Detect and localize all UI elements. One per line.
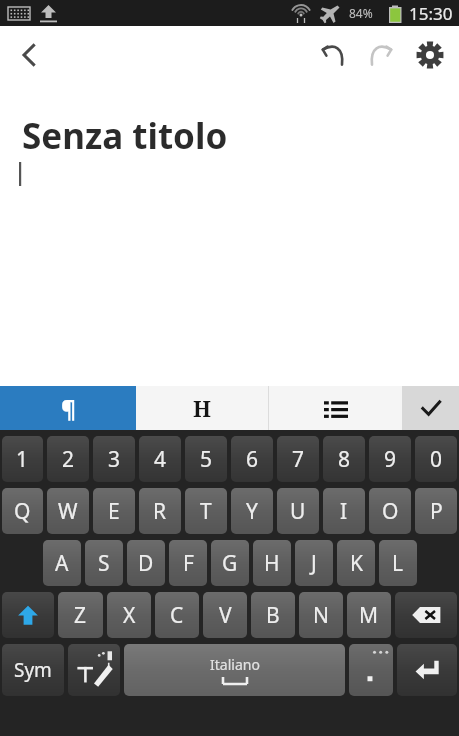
staticText: V xyxy=(219,601,232,630)
staticText: ¶ xyxy=(61,393,76,424)
staticText: K xyxy=(350,549,363,578)
button[interactable]: Undo xyxy=(309,31,357,79)
staticText: N xyxy=(313,601,329,630)
button[interactable]: 6 xyxy=(231,436,273,482)
staticText: J xyxy=(311,549,317,578)
button[interactable]: E xyxy=(93,488,135,534)
staticText: Senza titolo xyxy=(22,112,228,160)
button[interactable]: Enter xyxy=(397,644,457,696)
button[interactable]: A xyxy=(43,540,81,586)
button[interactable]: Period xyxy=(349,644,393,696)
staticText: M xyxy=(359,601,379,630)
staticText: 9 xyxy=(384,445,397,474)
button[interactable]: O xyxy=(369,488,411,534)
button[interactable]: List xyxy=(269,386,402,430)
staticText: 15:30 xyxy=(409,2,453,25)
staticText: S xyxy=(98,549,110,578)
staticText: 6 xyxy=(246,445,259,474)
staticText: B xyxy=(266,601,280,630)
button[interactable]: H xyxy=(253,540,291,586)
staticText: F xyxy=(183,549,194,578)
button[interactable]: F xyxy=(169,540,207,586)
staticText: 8 xyxy=(338,445,351,474)
staticText: I xyxy=(340,497,348,526)
staticText: P xyxy=(430,497,443,526)
button[interactable]: Z xyxy=(58,592,103,638)
staticText: E xyxy=(108,497,120,526)
staticText: O xyxy=(382,497,399,526)
staticText: T xyxy=(200,497,212,526)
button[interactable]: 8 xyxy=(323,436,365,482)
staticText: W xyxy=(58,497,78,526)
button[interactable]: T xyxy=(185,488,227,534)
button[interactable]: 9 xyxy=(369,436,411,482)
button[interactable]: 5 xyxy=(185,436,227,482)
button[interactable]: K xyxy=(337,540,375,586)
staticText: U xyxy=(290,497,306,526)
staticText: 0 xyxy=(430,445,443,474)
staticText: X xyxy=(123,601,136,630)
button[interactable]: C xyxy=(155,592,199,638)
staticText: D xyxy=(138,549,154,578)
button[interactable]: Handwriting and voice input xyxy=(68,644,120,696)
button[interactable]: W xyxy=(47,488,89,534)
button[interactable]: Redo xyxy=(357,31,405,79)
staticText: H xyxy=(264,549,280,578)
button[interactable]: I xyxy=(323,488,365,534)
staticText: L xyxy=(392,549,404,578)
button[interactable]: Space, Italiano xyxy=(124,644,345,696)
button[interactable]: M xyxy=(347,592,391,638)
button[interactable]: Heading xyxy=(136,386,269,430)
button[interactable]: N xyxy=(299,592,343,638)
button[interactable]: Shift xyxy=(2,592,54,638)
button[interactable]: R xyxy=(139,488,181,534)
button[interactable]: L xyxy=(379,540,417,586)
staticText: 2 xyxy=(62,445,75,474)
staticText: Z xyxy=(74,601,87,630)
staticText: R xyxy=(153,497,167,526)
staticText: Y xyxy=(246,497,258,526)
button[interactable]: 7 xyxy=(277,436,319,482)
button[interactable]: 2 xyxy=(47,436,89,482)
staticText: Q xyxy=(14,497,31,526)
button[interactable]: S xyxy=(85,540,123,586)
button[interactable]: P xyxy=(415,488,457,534)
button[interactable]: Back xyxy=(6,31,54,79)
staticText: 84% xyxy=(349,5,373,21)
staticText: 3 xyxy=(108,445,121,474)
button[interactable]: Sym xyxy=(2,644,64,696)
button[interactable]: Q xyxy=(2,488,43,534)
staticText: Italiano xyxy=(210,655,260,674)
button[interactable]: D xyxy=(127,540,165,586)
button[interactable]: 1 xyxy=(2,436,43,482)
button[interactable]: 3 xyxy=(93,436,135,482)
button[interactable]: Y xyxy=(231,488,273,534)
button[interactable]: G xyxy=(211,540,249,586)
button[interactable]: 4 xyxy=(139,436,181,482)
button[interactable]: Settings xyxy=(405,30,455,80)
staticText: A xyxy=(55,549,69,578)
staticText: 7 xyxy=(292,445,305,474)
button[interactable]: U xyxy=(277,488,319,534)
button[interactable]: V xyxy=(203,592,247,638)
staticText: C xyxy=(170,601,184,630)
button[interactable]: Paragraph style xyxy=(0,386,136,430)
button[interactable]: B xyxy=(251,592,295,638)
staticText: H xyxy=(193,393,212,423)
staticText: 1 xyxy=(16,445,29,474)
staticText: 5 xyxy=(200,445,213,474)
button[interactable]: X xyxy=(107,592,151,638)
button[interactable]: 0 xyxy=(415,436,457,482)
button[interactable]: Done xyxy=(402,386,459,430)
staticText: 4 xyxy=(154,445,167,474)
button[interactable]: Backspace xyxy=(395,592,457,638)
staticText: G xyxy=(222,549,238,578)
button[interactable]: J xyxy=(295,540,333,586)
staticText: Sym xyxy=(14,657,52,683)
